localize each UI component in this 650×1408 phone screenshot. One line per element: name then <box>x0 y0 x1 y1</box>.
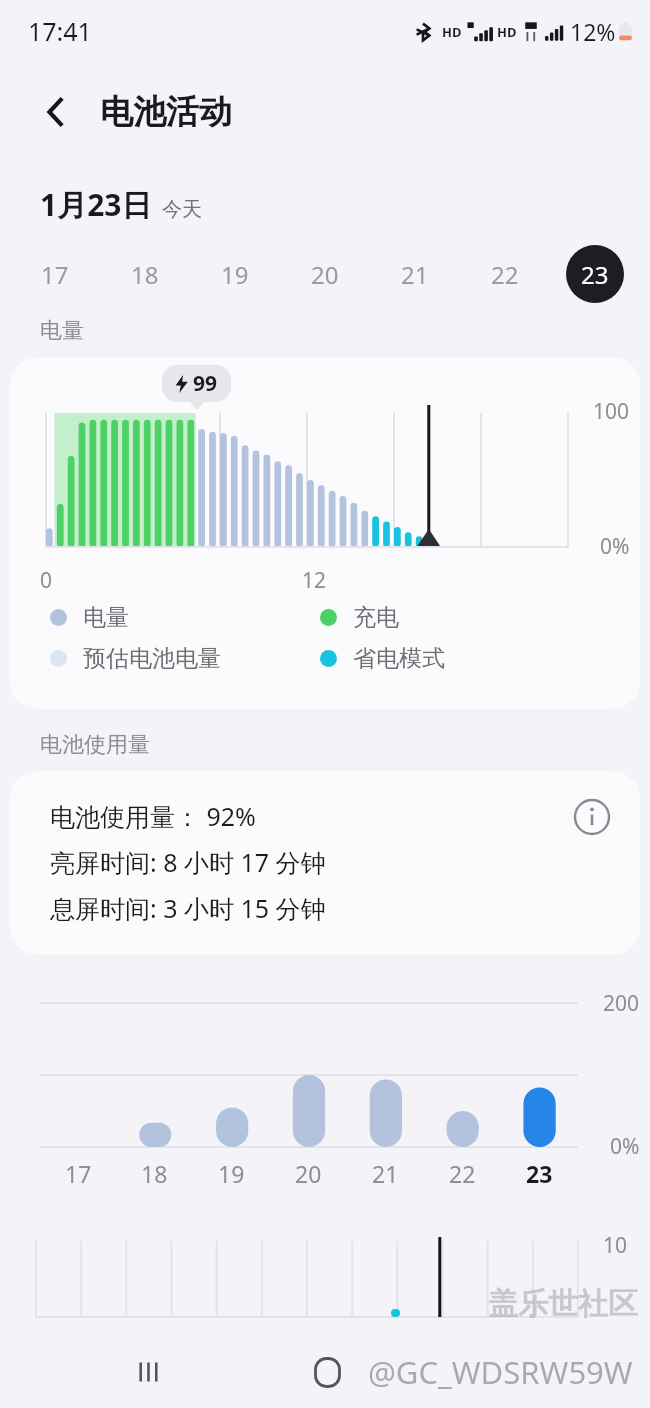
button[interactable]: 17 <box>26 245 84 303</box>
staticText: 亮屏时间: 8 小时 17 分钟 <box>50 845 326 879</box>
staticText: 22 <box>449 1158 476 1189</box>
button[interactable]: 100 <box>10 357 640 709</box>
staticText: 电量 <box>83 603 129 632</box>
staticText: 0% <box>610 1132 640 1161</box>
staticText: 21 <box>372 1158 399 1189</box>
staticText: 23 <box>526 1158 553 1189</box>
staticText: 21 <box>401 258 429 291</box>
button[interactable]: 最近任务 <box>122 1345 176 1399</box>
staticText: 18 <box>141 1158 168 1189</box>
button[interactable]: 返回 <box>34 90 78 134</box>
staticText: 0% <box>600 532 630 561</box>
staticText: 200 <box>603 989 640 1018</box>
button[interactable]: 19 <box>206 245 264 303</box>
staticText: 今天 <box>162 197 202 222</box>
staticText: 22 <box>491 258 519 291</box>
staticText: 电量 <box>40 317 84 345</box>
button[interactable]: 23 <box>566 245 624 303</box>
staticText: HD <box>442 23 462 41</box>
staticText: 电池使用量： 92% <box>50 799 256 833</box>
button[interactable]: 20 <box>296 245 354 303</box>
button[interactable]: 18 <box>116 245 174 303</box>
staticText: 10 <box>603 1231 628 1260</box>
button[interactable]: 详细信息 <box>568 793 616 841</box>
staticText: 1月23日 <box>40 184 152 225</box>
staticText: 19 <box>218 1158 245 1189</box>
staticText: 23 <box>581 258 609 291</box>
staticText: 12 <box>302 566 327 595</box>
staticText: 盖乐世社区 <box>488 1285 638 1323</box>
button[interactable]: 主页 <box>300 1345 354 1399</box>
staticText: 18 <box>131 258 159 291</box>
staticText: 息屏时间: 3 小时 15 分钟 <box>50 891 326 925</box>
staticText: 电池使用量 <box>40 731 150 759</box>
staticText: 99 <box>193 369 218 398</box>
staticText: 17:41 <box>28 14 92 48</box>
staticText: HD <box>497 23 517 41</box>
staticText: 19 <box>221 258 249 291</box>
button[interactable]: 22 <box>476 245 534 303</box>
staticText: 预估电池电量 <box>83 644 221 673</box>
staticText: 12% <box>570 16 616 47</box>
staticText: 0 <box>40 566 53 595</box>
staticText: @GC_WDSRW59W <box>368 1351 633 1393</box>
staticText: 17 <box>65 1158 92 1189</box>
button[interactable]: 21 <box>386 245 444 303</box>
staticText: 17 <box>41 258 69 291</box>
staticText: 20 <box>295 1158 322 1189</box>
button[interactable]: 200 <box>0 955 650 1205</box>
staticText: 电池活动 <box>100 91 232 133</box>
staticText: 20 <box>311 258 339 291</box>
staticText: 省电模式 <box>353 644 445 673</box>
button[interactable]: 电池使用量： 92% <box>10 771 640 955</box>
staticText: 充电 <box>353 603 399 632</box>
staticText: 100 <box>593 397 630 426</box>
